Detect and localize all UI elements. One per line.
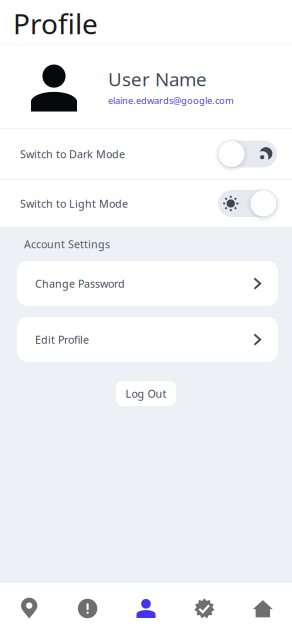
- staticText: Change Password: [35, 276, 125, 291]
- button[interactable]: Alerts: [58, 583, 117, 634]
- staticText: Account Settings: [24, 237, 110, 251]
- staticText: Log Out: [125, 386, 166, 401]
- button[interactable]: Verified: [175, 583, 234, 634]
- staticText: Edit Profile: [35, 332, 89, 347]
- staticText: User Name: [108, 66, 207, 91]
- staticText: Profile: [13, 5, 98, 42]
- button[interactable]: Change Password: [0, 261, 292, 306]
- button[interactable]: Edit Profile: [0, 317, 292, 362]
- button[interactable]: Profile: [117, 583, 175, 634]
- button[interactable]: Map: [0, 583, 58, 634]
- staticText: elaine.edwards@google.com: [108, 94, 234, 107]
- button[interactable]: Log Out: [116, 381, 176, 406]
- button[interactable]: Home: [234, 583, 292, 634]
- staticText: Switch to Light Mode: [20, 196, 128, 211]
- staticText: Switch to Dark Mode: [20, 147, 125, 161]
